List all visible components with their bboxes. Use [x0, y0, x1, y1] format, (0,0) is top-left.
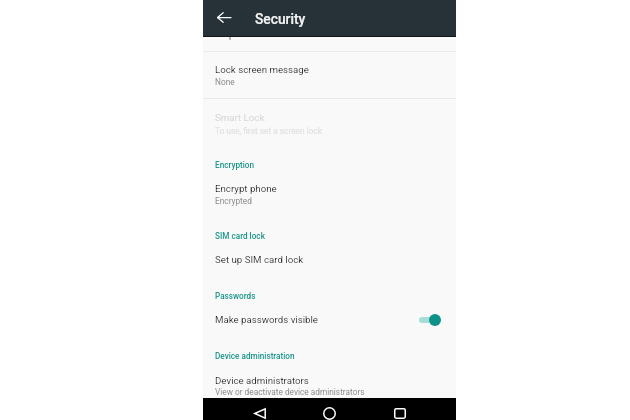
button[interactable]: Home [314, 402, 344, 420]
staticText: Device administrators [215, 375, 309, 386]
button[interactable]: Back [245, 402, 275, 420]
button[interactable]: Navigate up [210, 0, 238, 36]
staticText: Lock screen message [215, 64, 309, 75]
staticText: None [215, 77, 235, 87]
staticText: Encryption [215, 160, 255, 170]
staticText: Set up SIM card lock [215, 254, 304, 265]
staticText: Encrypt phone [215, 183, 277, 194]
button[interactable]: Make passwords visible [203, 305, 456, 337]
button[interactable]: Device administrators [203, 366, 456, 400]
staticText: To use, first set a screen lock [215, 126, 322, 136]
staticText: Security [255, 11, 306, 27]
button[interactable]: Encrypt phone [203, 174, 456, 216]
button[interactable]: Smart Lock [203, 100, 456, 146]
button[interactable]: Set up SIM card lock [203, 245, 456, 278]
staticText: View or deactivate device administrators [215, 387, 365, 397]
staticText: SIM card lock [215, 231, 265, 241]
staticText: Passwords [215, 291, 256, 301]
staticText: Encrypted [215, 196, 252, 206]
button[interactable]: Make passwords visible [415, 310, 445, 330]
staticText: Smart Lock [215, 112, 265, 123]
button[interactable]: Lock screen message [203, 52, 456, 98]
staticText: Make passwords visible [215, 314, 318, 325]
button[interactable]: Recent apps [385, 402, 415, 420]
staticText: Device administration [215, 351, 295, 361]
